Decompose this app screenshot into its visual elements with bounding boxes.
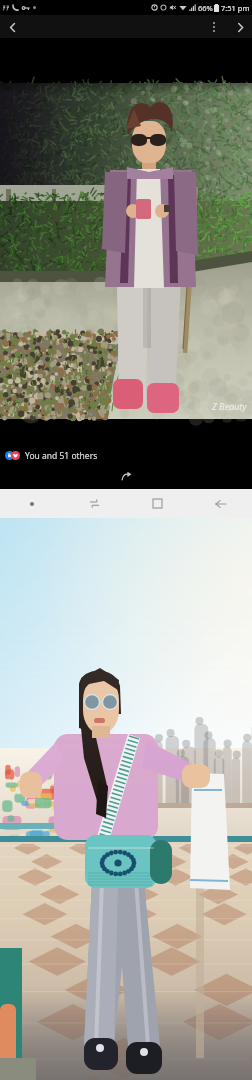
button[interactable]: Assistant xyxy=(0,489,63,518)
staticText: You and 51 others xyxy=(25,450,98,462)
button[interactable]: More options xyxy=(204,17,224,37)
staticText: 66% xyxy=(198,3,213,13)
button[interactable]: Back xyxy=(1,16,23,38)
staticText: 7:51 pm xyxy=(221,3,250,13)
staticText: Z Beauty xyxy=(212,400,247,412)
button[interactable]: Share xyxy=(0,464,252,489)
button[interactable]: Recents xyxy=(63,489,126,518)
button[interactable]: Home xyxy=(126,489,189,518)
button[interactable]: Back xyxy=(189,489,252,518)
button[interactable]: Next xyxy=(229,16,251,38)
button[interactable]: You and 51 others xyxy=(5,447,252,464)
